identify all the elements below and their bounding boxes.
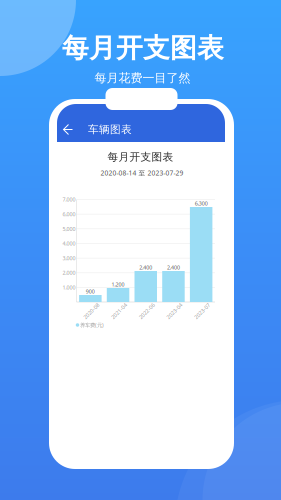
staticText: 4,000	[62, 240, 75, 247]
staticText: 每月花费一目了然	[94, 71, 190, 85]
staticText: 900	[86, 288, 95, 295]
staticText: 2020-08-14 至 2023-07-29	[100, 169, 183, 177]
staticText: 2023-07	[192, 307, 212, 315]
staticText: 6,300	[195, 200, 208, 207]
staticText: 1,200	[111, 281, 124, 288]
staticText: 7,000	[62, 196, 75, 203]
staticText: 2,400	[139, 264, 152, 271]
staticText: 2021-04	[109, 307, 129, 315]
staticText: 1,000	[62, 284, 75, 291]
staticText: 每月开支图表	[107, 150, 173, 163]
staticText: 3,000	[62, 255, 75, 262]
staticText: 2020-08	[81, 307, 101, 315]
staticText: 2022-06	[137, 307, 157, 315]
staticText: 每月开支图表	[62, 32, 224, 64]
staticText: 2,400	[167, 264, 180, 271]
button[interactable]: Back	[56, 118, 78, 140]
staticText: 车辆图表	[88, 123, 132, 136]
staticText: 6,000	[62, 211, 75, 218]
staticText: 养车费(元)	[80, 321, 104, 329]
staticText: 5,000	[62, 225, 75, 232]
staticText: 2,000	[62, 269, 75, 276]
staticText: 2023-04	[164, 307, 184, 315]
